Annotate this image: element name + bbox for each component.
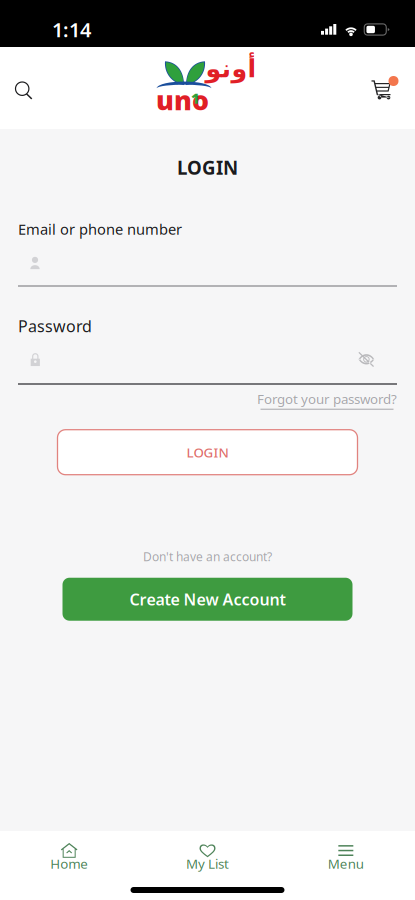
button[interactable]: LOGIN <box>57 430 357 475</box>
button[interactable]: Menu <box>277 831 415 900</box>
staticText: Forgot your password? <box>257 390 397 408</box>
staticText: 1:14 <box>52 16 91 43</box>
staticText: Don't have an account? <box>143 549 272 565</box>
staticText: My List <box>186 855 229 872</box>
staticText: uno <box>156 82 209 118</box>
staticText: Home <box>50 855 88 872</box>
staticText: LOGIN <box>186 443 228 461</box>
staticText: أونو <box>205 54 256 83</box>
staticText: Menu <box>328 855 364 872</box>
button[interactable]: Forgot your password? <box>257 390 397 410</box>
button[interactable]: Show password <box>358 351 375 367</box>
staticText: Create New Account <box>129 589 285 610</box>
button[interactable]: Search <box>5 71 43 109</box>
button[interactable]: Home <box>0 831 138 900</box>
staticText: LOGIN <box>177 155 238 180</box>
button[interactable]: Create New Account <box>62 578 352 621</box>
button[interactable]: My List <box>138 831 277 900</box>
staticText: Password <box>18 315 92 337</box>
staticText: Email or phone number <box>18 219 182 239</box>
staticText: 1 <box>191 88 200 108</box>
button[interactable]: Cart <box>371 77 399 103</box>
